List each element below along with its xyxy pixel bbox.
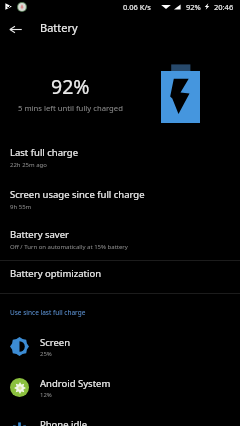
staticText: Off / Turn on automatically at 15% batte…	[10, 243, 128, 251]
staticText: Screen	[40, 336, 71, 349]
staticText: 9h 55m	[10, 203, 32, 211]
button[interactable]: Use since last full charge	[0, 300, 240, 324]
staticText: 20:46	[214, 2, 234, 12]
button[interactable]: Battery saver	[0, 226, 240, 266]
staticText: Battery saver	[10, 228, 69, 241]
button[interactable]: Last full charge	[0, 144, 240, 184]
staticText: Use since last full charge	[10, 308, 86, 317]
staticText: 5 mins left until fully charged	[18, 103, 123, 113]
staticText: 92%	[51, 73, 90, 100]
staticText: 92%	[186, 2, 201, 12]
button[interactable]: Screen usage since full charge	[0, 186, 240, 226]
button[interactable]: Phone idle	[0, 408, 240, 426]
staticText: 12%	[40, 391, 52, 399]
staticText: Last full charge	[10, 146, 79, 159]
button[interactable]: Android System	[0, 367, 240, 408]
button[interactable]: Screen	[0, 326, 240, 367]
staticText: Screen usage since full charge	[10, 188, 145, 201]
button[interactable]: Battery optimization	[0, 257, 240, 289]
staticText: Battery	[40, 20, 78, 35]
button[interactable]: Back	[0, 16, 28, 44]
staticText: 22h 25m ago	[10, 161, 47, 169]
staticText: Android System	[40, 377, 111, 390]
staticText: 25%	[40, 350, 52, 358]
staticText: Battery optimization	[10, 267, 102, 280]
staticText: Phone idle	[40, 418, 88, 426]
staticText: 0.06 K/s	[123, 2, 151, 12]
